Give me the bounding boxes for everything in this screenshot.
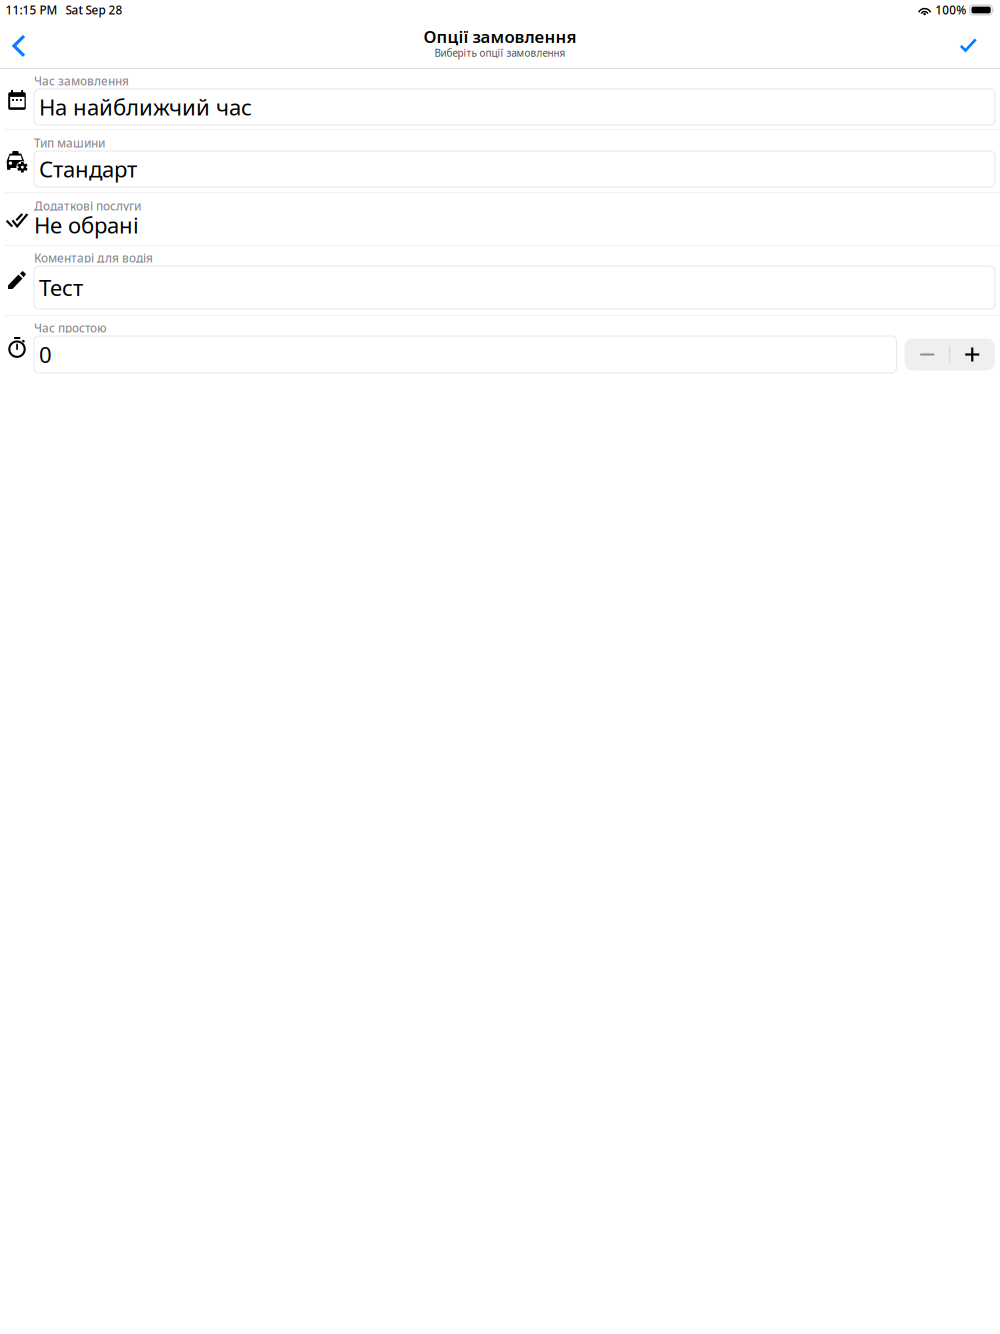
staticText: Sat Sep 28 bbox=[65, 2, 122, 18]
staticText: На найближчий час bbox=[39, 92, 252, 122]
button[interactable]: Час замовлення bbox=[0, 69, 1000, 129]
button[interactable]: Тип машини bbox=[0, 130, 1000, 192]
staticText: Не обрані bbox=[34, 210, 139, 240]
staticText: Тип машини bbox=[34, 135, 105, 151]
button[interactable]: Decrease bbox=[905, 338, 949, 370]
staticText: 11:15 PM bbox=[5, 2, 57, 18]
staticText: Додаткові послуги bbox=[34, 198, 141, 214]
staticText: 100% bbox=[935, 2, 966, 18]
button[interactable]: Коментарі для водія bbox=[0, 246, 1000, 315]
staticText: Час простою bbox=[34, 320, 107, 336]
staticText: 0 bbox=[39, 339, 52, 369]
button[interactable]: Back bbox=[0, 22, 41, 68]
button[interactable]: Done bbox=[944, 22, 1000, 68]
button[interactable]: Increase bbox=[950, 338, 994, 370]
staticText: Коментарі для водія bbox=[34, 250, 153, 266]
staticText: Тест bbox=[39, 272, 83, 302]
button[interactable]: Додаткові послуги bbox=[0, 193, 1000, 245]
staticText: Опції замовлення bbox=[423, 25, 576, 48]
staticText: Час замовлення bbox=[34, 73, 129, 89]
staticText: Виберіть опції замовлення bbox=[434, 46, 565, 60]
staticText: Стандарт bbox=[39, 154, 137, 184]
